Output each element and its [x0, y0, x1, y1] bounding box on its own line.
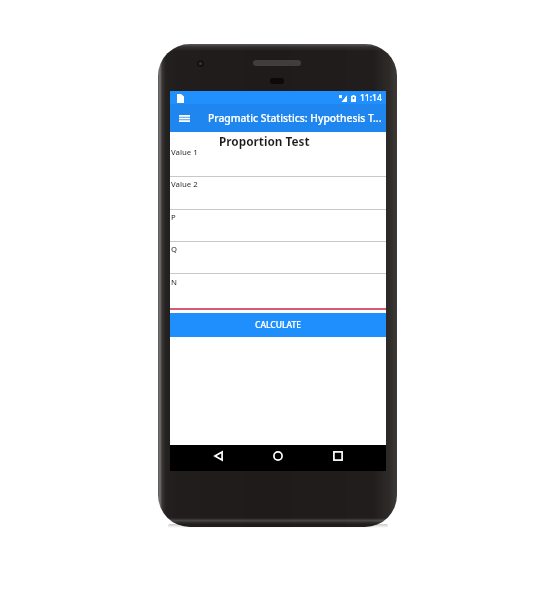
staticText: Value 2 — [171, 179, 198, 189]
button[interactable]: P — [170, 209, 386, 241]
staticText: Q — [171, 244, 178, 254]
button[interactable]: Home — [267, 445, 289, 467]
staticText: Pragmatic Statistics: Hypothesis T... — [208, 111, 382, 125]
staticText: Value 1 — [171, 147, 198, 157]
staticText: 11:14 — [360, 92, 382, 104]
staticText: CALCULATE — [255, 319, 302, 331]
button[interactable]: N — [170, 274, 386, 308]
button[interactable]: Q — [170, 241, 386, 273]
staticText: P — [171, 212, 176, 222]
button[interactable]: Open navigation menu — [170, 104, 198, 132]
button[interactable]: Recent apps — [327, 445, 349, 467]
staticText: Proportion Test — [219, 133, 310, 149]
staticText: N — [171, 277, 177, 287]
button[interactable]: Value 1 — [170, 144, 386, 176]
button[interactable]: Value 2 — [170, 176, 386, 208]
button[interactable]: Back — [207, 445, 229, 467]
button[interactable]: CALCULATE — [170, 313, 386, 337]
